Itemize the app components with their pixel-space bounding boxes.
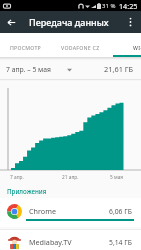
staticText: ПРОСМОТР [10,44,42,51]
button[interactable]: Chrome [0,198,141,227]
staticText: Chrome [29,206,56,216]
staticText: 7 апр. – 5 мая [6,65,52,74]
button[interactable]: Mediabay.TV [0,229,141,250]
staticText: 31 % [102,2,116,10]
staticText: Передача данных [29,16,109,28]
button[interactable]: WI-FI [113,35,141,59]
button[interactable]: More options [120,12,140,32]
staticText: 5,14 ГБ [109,238,132,247]
staticText: 14:25 [119,1,138,11]
button[interactable]: 7 апр. – 5 мая [6,65,72,74]
staticText: Mediabay.TV [29,237,72,247]
button[interactable]: ПРОСМОТР [0,35,52,59]
staticText: Приложения [7,187,47,195]
staticText: WI-FI [133,44,141,51]
staticText: 21,61 ГБ [104,64,134,74]
staticText: 6,06 ГБ [109,207,132,216]
button[interactable]: Back [1,12,21,32]
staticText: 5 мая [110,174,124,181]
button[interactable]: VODAFONE CZ [52,35,108,59]
staticText: 21 апр. [62,174,79,181]
staticText: 7 апр. [10,174,24,181]
staticText: VODAFONE CZ [61,44,100,51]
